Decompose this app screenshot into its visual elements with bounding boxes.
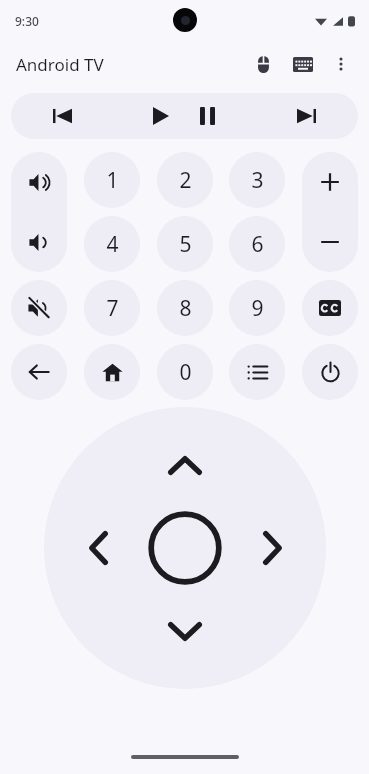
button[interactable]: 1 <box>84 152 140 208</box>
button[interactable]: Next <box>254 93 358 139</box>
button[interactable]: 8 <box>157 280 213 336</box>
button[interactable]: 2 <box>157 152 213 208</box>
button[interactable]: Mute <box>11 280 67 336</box>
button[interactable]: Left <box>68 518 128 578</box>
button[interactable]: 6 <box>229 216 285 272</box>
staticText: 5 <box>179 230 192 259</box>
button[interactable]: More options <box>323 46 359 82</box>
button[interactable]: Volume down <box>11 212 67 272</box>
button[interactable]: Closed captions <box>302 280 358 336</box>
staticText: 1 <box>106 166 119 195</box>
button[interactable]: Play <box>140 95 182 137</box>
button[interactable]: Channel up <box>302 152 358 212</box>
button[interactable]: Pause <box>186 95 228 137</box>
staticText: 6 <box>251 230 264 259</box>
staticText: Android TV <box>16 53 104 76</box>
staticText: 7 <box>106 294 119 323</box>
button[interactable]: Home <box>84 344 140 400</box>
button[interactable]: Back <box>11 344 67 400</box>
button[interactable]: 0 <box>157 344 213 400</box>
staticText: 2 <box>179 166 192 195</box>
button[interactable]: Touchpad <box>243 44 283 84</box>
button[interactable]: Right <box>242 518 302 578</box>
staticText: 4 <box>106 230 119 259</box>
button[interactable]: 3 <box>229 152 285 208</box>
button[interactable]: Select <box>142 505 228 591</box>
button[interactable]: Power <box>302 344 358 400</box>
button[interactable]: Guide <box>229 344 285 400</box>
button[interactable]: Channel down <box>302 212 358 272</box>
staticText: 8 <box>179 294 192 323</box>
button[interactable]: 5 <box>157 216 213 272</box>
button[interactable]: Keyboard <box>283 44 323 84</box>
button[interactable]: Volume up <box>11 152 67 212</box>
button[interactable]: Up <box>155 435 215 495</box>
button[interactable]: 9 <box>229 280 285 336</box>
button[interactable]: 4 <box>84 216 140 272</box>
staticText: 3 <box>251 166 264 195</box>
staticText: 0 <box>179 358 192 387</box>
staticText: 9 <box>251 294 264 323</box>
button[interactable]: Previous <box>11 93 114 139</box>
button[interactable]: Down <box>155 601 215 661</box>
button[interactable]: 7 <box>84 280 140 336</box>
staticText: 9:30 <box>15 13 39 29</box>
